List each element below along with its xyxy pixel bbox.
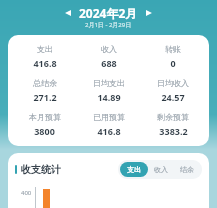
button[interactable]: 本月预算 <box>12 112 77 137</box>
staticText: 剩余预算 <box>157 112 189 122</box>
staticText: 收支统计 <box>21 163 61 176</box>
staticText: 收入 <box>154 165 168 174</box>
staticText: 416.8 <box>97 125 121 137</box>
button[interactable]: Previous month <box>61 6 75 20</box>
staticText: 已用预算 <box>93 112 125 122</box>
button[interactable]: 剩余预算 <box>141 112 205 137</box>
button[interactable]: 已用预算 <box>77 112 141 137</box>
staticText: 24.57 <box>161 91 185 103</box>
button[interactable]: 日均支出 <box>77 78 141 103</box>
button[interactable]: 总结余 <box>12 78 77 103</box>
button[interactable]: 支出 <box>12 44 77 69</box>
button[interactable]: Next month <box>142 6 156 20</box>
button[interactable]: 收入 <box>77 44 141 69</box>
staticText: 支出 <box>37 44 53 54</box>
staticText: 2024年2月 <box>79 5 138 21</box>
staticText: 688 <box>101 57 117 69</box>
staticText: 400 <box>21 189 32 197</box>
staticText: 总结余 <box>33 78 57 88</box>
staticText: 3383.2 <box>159 125 188 137</box>
button[interactable]: 支出 <box>120 162 148 177</box>
button[interactable]: 日均收入 <box>141 78 205 103</box>
staticText: 271.2 <box>33 91 57 103</box>
staticText: 转账 <box>165 44 181 54</box>
staticText: 2月1日 - 2月29日 <box>85 21 132 29</box>
staticText: 14.89 <box>97 91 121 103</box>
button[interactable]: 收入 <box>148 162 174 177</box>
staticText: 416.8 <box>33 57 57 69</box>
staticText: 0 <box>170 57 176 69</box>
staticText: 日均支出 <box>93 78 125 88</box>
staticText: 支出 <box>127 165 141 174</box>
staticText: 3800 <box>34 125 55 137</box>
button[interactable]: 转账 <box>141 44 205 69</box>
staticText: 结余 <box>180 165 194 174</box>
button[interactable]: 结余 <box>174 162 200 177</box>
staticText: 日均收入 <box>157 78 189 88</box>
staticText: 收入 <box>101 44 117 54</box>
staticText: 本月预算 <box>29 112 61 122</box>
